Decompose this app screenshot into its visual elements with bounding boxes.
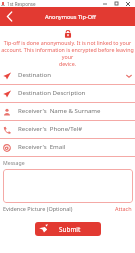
staticText: Submit (59, 225, 81, 234)
staticText: Receiver's Phone/Tel# (18, 124, 83, 132)
staticText: Receiver's Name & Surname (18, 106, 101, 114)
staticText: Attach (115, 205, 132, 212)
button[interactable] (3, 169, 133, 203)
staticText: Evidence Picture (Optional) (3, 205, 73, 212)
button[interactable]: Submit (35, 222, 101, 236)
staticText: Message (3, 159, 25, 166)
button[interactable]: Maximize (111, 0, 121, 7)
button[interactable]: Destination Description (0, 85, 135, 103)
button[interactable]: Receiver's Name & Surname (0, 103, 135, 121)
button[interactable]: Minimize (100, 0, 110, 7)
staticText: 1st Response (7, 1, 36, 7)
button[interactable]: Receiver's Email (0, 139, 135, 157)
staticText: Tip-off is done anonymously. It is not l… (1, 39, 134, 67)
button[interactable]: Close (122, 0, 133, 7)
staticText: Anonymous Tip-Off (45, 13, 96, 21)
button[interactable]: Attach (115, 205, 132, 212)
staticText: Destination Description (18, 88, 86, 96)
staticText: Receiver's Email (18, 142, 66, 150)
button[interactable]: Back (2, 9, 17, 24)
button[interactable]: Receiver's Phone/Tel# (0, 121, 135, 139)
button[interactable]: Destination (0, 67, 135, 85)
staticText: Destination (18, 70, 51, 78)
